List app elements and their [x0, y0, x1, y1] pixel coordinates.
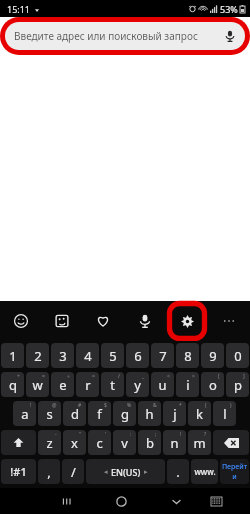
button[interactable]: a	[13, 401, 36, 426]
other: Shift	[13, 437, 24, 448]
button[interactable]: u	[151, 372, 174, 397]
staticText: e	[59, 376, 67, 394]
staticText: g	[121, 405, 129, 423]
button[interactable]: z	[38, 430, 61, 455]
button[interactable]: 7	[151, 343, 174, 368]
button[interactable]: c	[88, 430, 111, 455]
button[interactable]: 2	[26, 343, 49, 368]
button[interactable]: Hide keyboard	[159, 488, 194, 514]
staticText: ?	[204, 431, 207, 438]
button[interactable]: Введите адрес или поисковый запрос	[5, 22, 245, 50]
staticText: _	[142, 373, 145, 380]
button[interactable]: /	[62, 459, 84, 484]
button[interactable]: f	[88, 401, 111, 426]
button[interactable]: q	[1, 372, 24, 397]
button[interactable]: o	[201, 372, 224, 397]
button[interactable]: s	[38, 401, 61, 426]
staticText: m	[193, 434, 206, 452]
staticText: ÷	[67, 373, 70, 380]
staticText: z	[46, 434, 53, 452]
button[interactable]: p	[226, 372, 249, 397]
button[interactable]: 6	[126, 343, 149, 368]
button[interactable]: t	[101, 372, 124, 397]
button[interactable]: Emoji	[0, 301, 41, 341]
button[interactable]: Shift	[1, 430, 36, 455]
button[interactable]: Backspace	[213, 430, 249, 455]
button[interactable]: l	[213, 401, 236, 426]
button[interactable]: 1	[1, 343, 24, 368]
staticText: "	[79, 431, 82, 438]
staticText: t	[110, 376, 115, 394]
button[interactable]: 4	[76, 343, 99, 368]
button[interactable]: k	[188, 401, 211, 426]
button[interactable]: ◂	[86, 459, 165, 484]
staticText: u	[158, 376, 167, 394]
staticText: ◂	[104, 468, 108, 476]
button[interactable]: 0	[226, 343, 249, 368]
staticText: ]	[243, 373, 245, 380]
staticText: @	[52, 402, 57, 409]
button[interactable]: e	[51, 372, 74, 397]
staticText: c	[96, 434, 103, 452]
button[interactable]: Stickers	[41, 301, 82, 341]
button[interactable]: j	[163, 401, 186, 426]
button[interactable]: i	[176, 372, 199, 397]
staticText: Перейти	[220, 462, 249, 482]
staticText: l	[223, 405, 227, 423]
staticText: .	[176, 463, 180, 481]
button[interactable]: More options	[208, 301, 250, 341]
button[interactable]: d	[63, 401, 86, 426]
button[interactable]: v	[113, 430, 136, 455]
staticText: !	[30, 402, 32, 409]
staticText: 7	[159, 347, 167, 365]
button[interactable]: Recents	[49, 488, 84, 514]
staticText: 1	[9, 347, 17, 365]
staticText: !#1	[10, 464, 27, 479]
button[interactable]: Settings	[168, 302, 206, 340]
staticText: +	[17, 373, 20, 380]
other: Backspace	[224, 438, 239, 448]
staticText: #	[78, 402, 82, 409]
staticText: 0	[234, 347, 242, 365]
button[interactable]: y	[126, 372, 149, 397]
staticText: 3	[59, 347, 67, 365]
button[interactable]: r	[76, 372, 99, 397]
staticText: '	[105, 431, 107, 438]
staticText: /	[118, 373, 120, 380]
staticText: www.	[194, 466, 216, 477]
staticText: /	[71, 463, 76, 481]
staticText: $	[104, 402, 107, 409]
button[interactable]: w	[26, 372, 49, 397]
button[interactable]: www.	[191, 459, 218, 484]
button[interactable]: Home	[104, 488, 139, 514]
staticText: =	[92, 373, 95, 380]
staticText: 4	[84, 347, 92, 365]
staticText: )	[230, 402, 232, 409]
staticText: y	[134, 376, 141, 394]
staticText: 8	[184, 347, 192, 365]
button[interactable]: 5	[101, 343, 124, 368]
button[interactable]: n	[163, 430, 186, 455]
staticText: s	[46, 405, 53, 423]
button[interactable]: b	[138, 430, 161, 455]
button[interactable]: 3	[51, 343, 74, 368]
button[interactable]: 8	[176, 343, 199, 368]
button[interactable]: Voice search	[222, 28, 238, 44]
button[interactable]: .	[167, 459, 189, 484]
button[interactable]: m	[188, 430, 211, 455]
button[interactable]: g	[113, 401, 136, 426]
button[interactable]: Favorites	[82, 301, 124, 341]
button[interactable]: Keyboard layout	[199, 488, 234, 514]
staticText: q	[9, 376, 17, 394]
button[interactable]: ,	[38, 459, 60, 484]
button[interactable]: x	[63, 430, 86, 455]
button[interactable]: h	[138, 401, 161, 426]
button[interactable]: !#1	[1, 459, 36, 484]
button[interactable]: Перейти	[220, 459, 249, 484]
staticText: Введите адрес или поисковый запрос	[14, 29, 198, 43]
staticText: &	[153, 402, 157, 409]
button[interactable]: Voice input	[124, 301, 166, 341]
staticText: ×	[42, 373, 45, 380]
staticText: f	[97, 405, 102, 423]
button[interactable]: 9	[201, 343, 224, 368]
